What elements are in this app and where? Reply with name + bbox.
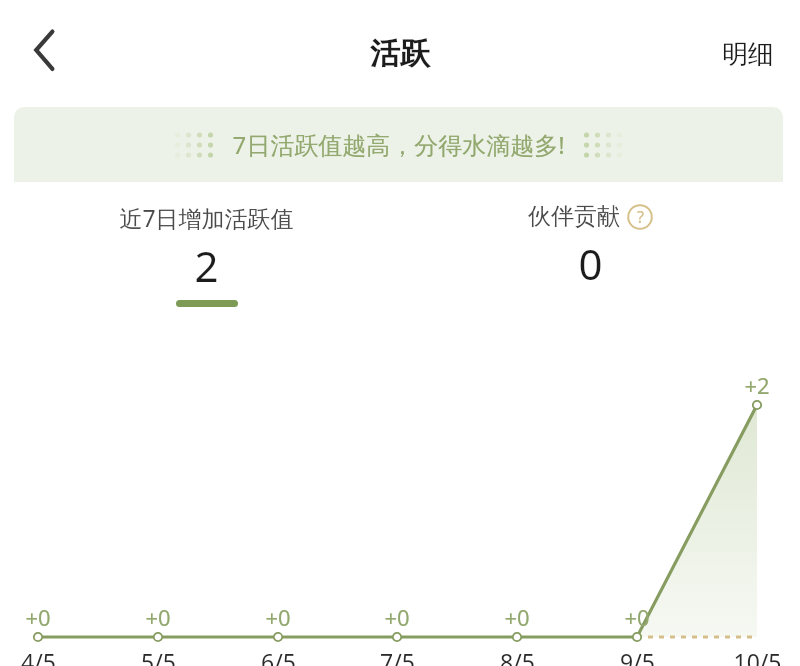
staticText: 7/5: [380, 646, 415, 666]
staticText: 8/5: [500, 646, 535, 666]
staticText: 0: [578, 235, 603, 292]
staticText: +0: [624, 602, 650, 632]
button[interactable]: 近7日增加活跃值: [14, 182, 398, 314]
button[interactable]: Back: [12, 18, 76, 82]
button[interactable]: 明细: [714, 28, 782, 81]
staticText: +0: [145, 602, 171, 632]
staticText: 9/5: [620, 646, 655, 666]
staticText: +2: [744, 370, 770, 400]
staticText: 2: [194, 237, 219, 294]
staticText: 6/5: [261, 646, 296, 666]
staticText: 5/5: [141, 646, 176, 666]
staticText: 4/5: [21, 646, 56, 666]
staticText: +0: [504, 602, 530, 632]
staticText: 伙伴贡献: [528, 202, 620, 231]
staticText: +0: [265, 602, 291, 632]
staticText: 7日活跃值越高，分得水滴越多!: [232, 128, 565, 161]
staticText: 活跃: [370, 35, 430, 73]
staticText: 明细: [722, 38, 774, 71]
staticText: +0: [384, 602, 410, 632]
staticText: 近7日增加活跃值: [119, 202, 294, 233]
button[interactable]: 伙伴贡献: [398, 182, 783, 314]
staticText: 10/5: [733, 646, 782, 666]
staticText: +0: [25, 602, 51, 632]
button[interactable]: Help: [627, 204, 653, 230]
staticText: ?: [637, 206, 644, 228]
